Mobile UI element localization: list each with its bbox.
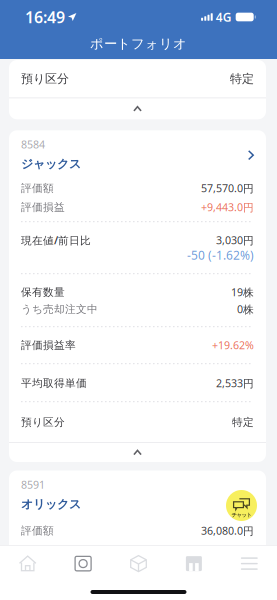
staticText: -50 (-1.62%) [187, 247, 254, 263]
button[interactable]: 資産 [55, 546, 111, 582]
staticText: 8591 [21, 477, 45, 492]
staticText: +9,443.0円 [201, 200, 254, 214]
button[interactable]: メニュー [222, 546, 277, 582]
staticText: 評価損益率 [21, 339, 76, 352]
staticText: 8584 [21, 137, 45, 151]
staticText: 評価額 [21, 182, 54, 195]
button[interactable]: 商品 [111, 546, 166, 582]
button[interactable]: 預り区分 [9, 60, 266, 97]
staticText: 特定 [232, 416, 254, 429]
staticText: 現在値/前日比 [21, 233, 91, 247]
staticText: 評価額 [21, 524, 54, 537]
staticText: 0株 [237, 302, 254, 316]
staticText: チャット [231, 512, 251, 518]
staticText: 16:49 [25, 6, 65, 28]
staticText: 保有数量 [21, 286, 65, 299]
staticText: 4G [216, 9, 232, 25]
staticText: 預り区分 [21, 416, 65, 429]
button[interactable]: 折りたたむ [9, 443, 266, 462]
staticText: 特定 [230, 71, 254, 86]
button[interactable]: チャット [226, 490, 257, 521]
button[interactable]: 8591 [9, 470, 266, 525]
staticText: 平均取得単価 [21, 377, 87, 390]
button[interactable]: 8584 [9, 130, 266, 182]
button[interactable]: マーケット [166, 546, 222, 582]
staticText: うち売却注文中 [21, 303, 98, 316]
staticText: ジャックス [21, 157, 81, 171]
staticText: 19株 [231, 285, 254, 299]
staticText: ポートフォリオ [90, 36, 187, 52]
staticText: 36,080.0円 [201, 524, 254, 538]
staticText: 預り区分 [21, 71, 69, 86]
staticText: オリックス [21, 497, 81, 511]
button[interactable]: ホーム [0, 546, 55, 582]
staticText: 3,030円 [216, 233, 254, 247]
button[interactable]: 折りたたむ [9, 98, 266, 119]
staticText: +19.62% [212, 338, 254, 352]
staticText: 2,533円 [216, 376, 254, 390]
staticText: 評価損益 [21, 201, 65, 214]
staticText: 57,570.0円 [201, 181, 254, 195]
